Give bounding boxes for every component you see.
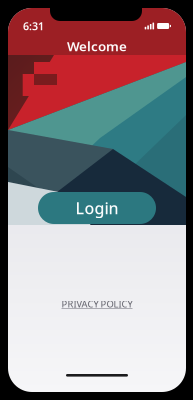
button[interactable]: Login [38, 192, 156, 224]
staticText: Login [75, 197, 118, 219]
staticText: Welcome [67, 37, 127, 55]
staticText: PRIVACY POLICY [61, 298, 132, 310]
button[interactable]: PRIVACY POLICY [8, 298, 186, 310]
staticText: 6:31 [23, 19, 44, 33]
